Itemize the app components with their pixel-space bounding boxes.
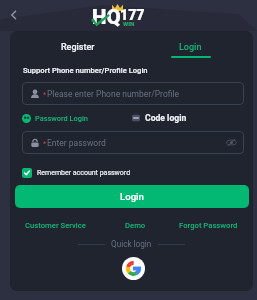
button[interactable]: Register (50, 36, 105, 58)
staticText: Login (120, 191, 144, 202)
staticText: Code login (145, 113, 187, 123)
button[interactable]: Remember account password (22, 168, 131, 178)
button[interactable]: Customer Service (25, 221, 86, 230)
button[interactable]: Login (15, 185, 249, 208)
staticText: 177 (120, 7, 145, 24)
button[interactable]: Forgot Password (179, 221, 238, 230)
button[interactable]: * (22, 131, 244, 154)
button[interactable]: Show password (226, 137, 237, 148)
staticText: Quick login (111, 239, 152, 249)
staticText: Please enter Phone number/Profile (47, 89, 180, 99)
button[interactable]: * (22, 82, 244, 105)
button[interactable]: Back (6, 7, 22, 23)
staticText: WIN (123, 20, 135, 27)
staticText: Support Phone number/Profile Login (23, 66, 148, 75)
staticText: HQ (92, 5, 121, 29)
button[interactable]: Login (163, 36, 218, 61)
staticText: Remember account password (37, 169, 131, 177)
staticText: * (43, 140, 47, 148)
button[interactable]: Demo (125, 221, 146, 230)
staticText: Login (179, 42, 202, 53)
staticText: Password Login (35, 114, 88, 123)
staticText: Enter password (47, 138, 106, 148)
staticText: * (43, 91, 47, 99)
button[interactable]: Code login (132, 113, 187, 123)
staticText: Register (61, 42, 95, 53)
button[interactable]: Password Login (22, 114, 88, 123)
button[interactable]: Sign in with Google (122, 257, 145, 280)
